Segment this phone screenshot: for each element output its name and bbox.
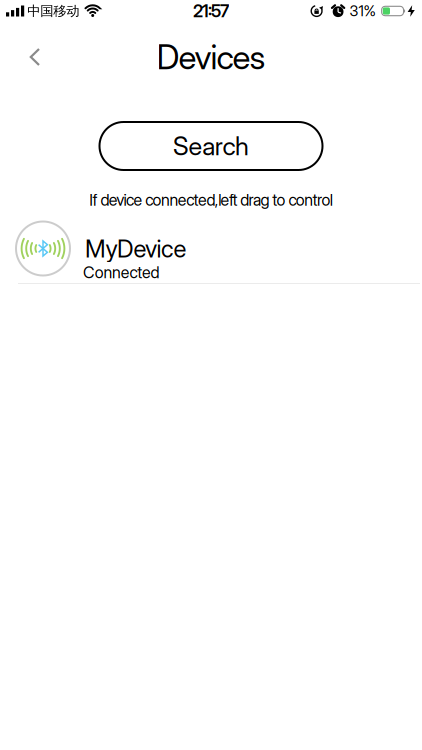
staticText: MyDevice [85, 234, 186, 263]
staticText: Connected [83, 263, 160, 282]
staticText: 31% [350, 2, 376, 20]
staticText: 21:57 [193, 1, 229, 21]
staticText: 中国移动 [27, 3, 79, 19]
staticText: Devices [156, 37, 265, 77]
button[interactable]: MyDevice [0, 215, 422, 283]
button[interactable]: Back [0, 38, 52, 76]
button[interactable]: Search [98, 121, 323, 171]
staticText: If device connected,left drag to control [89, 190, 333, 209]
staticText: Search [173, 131, 249, 161]
